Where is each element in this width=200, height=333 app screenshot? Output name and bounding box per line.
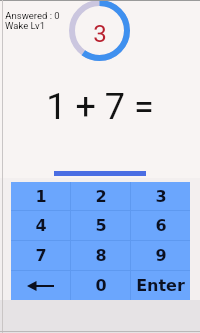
staticText: 6 <box>155 216 167 235</box>
button[interactable]: 0 <box>71 271 130 300</box>
staticText: 9 <box>155 246 167 265</box>
button[interactable]: Backspace <box>11 271 70 300</box>
button[interactable]: 5 <box>71 211 130 240</box>
button[interactable]: 7 <box>11 241 70 270</box>
button[interactable]: 1 <box>11 182 70 210</box>
button[interactable]: 3 <box>131 182 190 210</box>
button[interactable]: 8 <box>71 241 130 270</box>
staticText: 0 <box>95 276 107 295</box>
staticText: 7 <box>35 246 47 265</box>
button[interactable]: 9 <box>131 241 190 270</box>
staticText: Answered : 0 <box>5 10 60 21</box>
staticText: 1 + 7 = <box>46 86 154 128</box>
staticText: 3 <box>155 187 167 206</box>
staticText: 2 <box>95 187 107 206</box>
staticText: Wake Lv1 <box>5 20 45 31</box>
button[interactable]: 2 <box>71 182 130 210</box>
staticText: 5 <box>95 216 107 235</box>
staticText: 1 <box>35 187 47 206</box>
staticText: 3 <box>93 20 107 48</box>
button[interactable]: 6 <box>131 211 190 240</box>
button[interactable]: 4 <box>11 211 70 240</box>
staticText: Enter <box>136 276 185 295</box>
button[interactable]: Enter <box>131 271 190 300</box>
staticText: 4 <box>35 216 47 235</box>
staticText: 8 <box>95 246 107 265</box>
